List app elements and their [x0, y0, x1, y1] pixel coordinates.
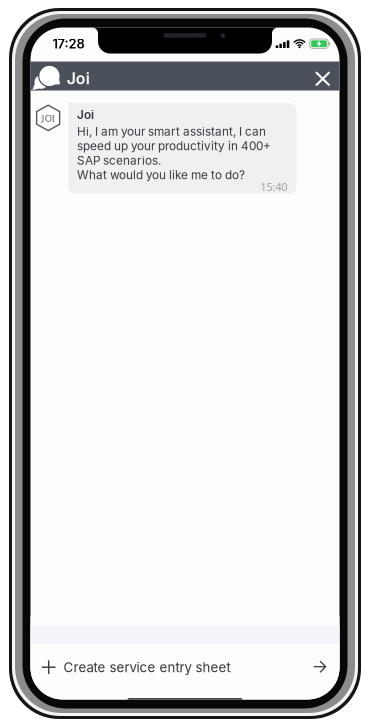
- staticText: Joi: [67, 69, 90, 88]
- button[interactable]: Close: [309, 65, 336, 92]
- staticText: JOI: [42, 112, 55, 124]
- button[interactable]: Create service entry sheet: [30, 643, 339, 684]
- staticText: Joi: [77, 108, 94, 122]
- staticText: speed up your productivity in 400+: [77, 139, 271, 153]
- staticText: 15:40: [261, 180, 288, 194]
- staticText: Hi, I am your smart assistant, I can: [77, 124, 266, 138]
- staticText: 17:28: [52, 36, 84, 52]
- staticText: Create service entry sheet: [63, 659, 230, 675]
- staticText: What would you like me to do?: [77, 168, 245, 182]
- staticText: SAP scenarios.: [77, 153, 161, 167]
